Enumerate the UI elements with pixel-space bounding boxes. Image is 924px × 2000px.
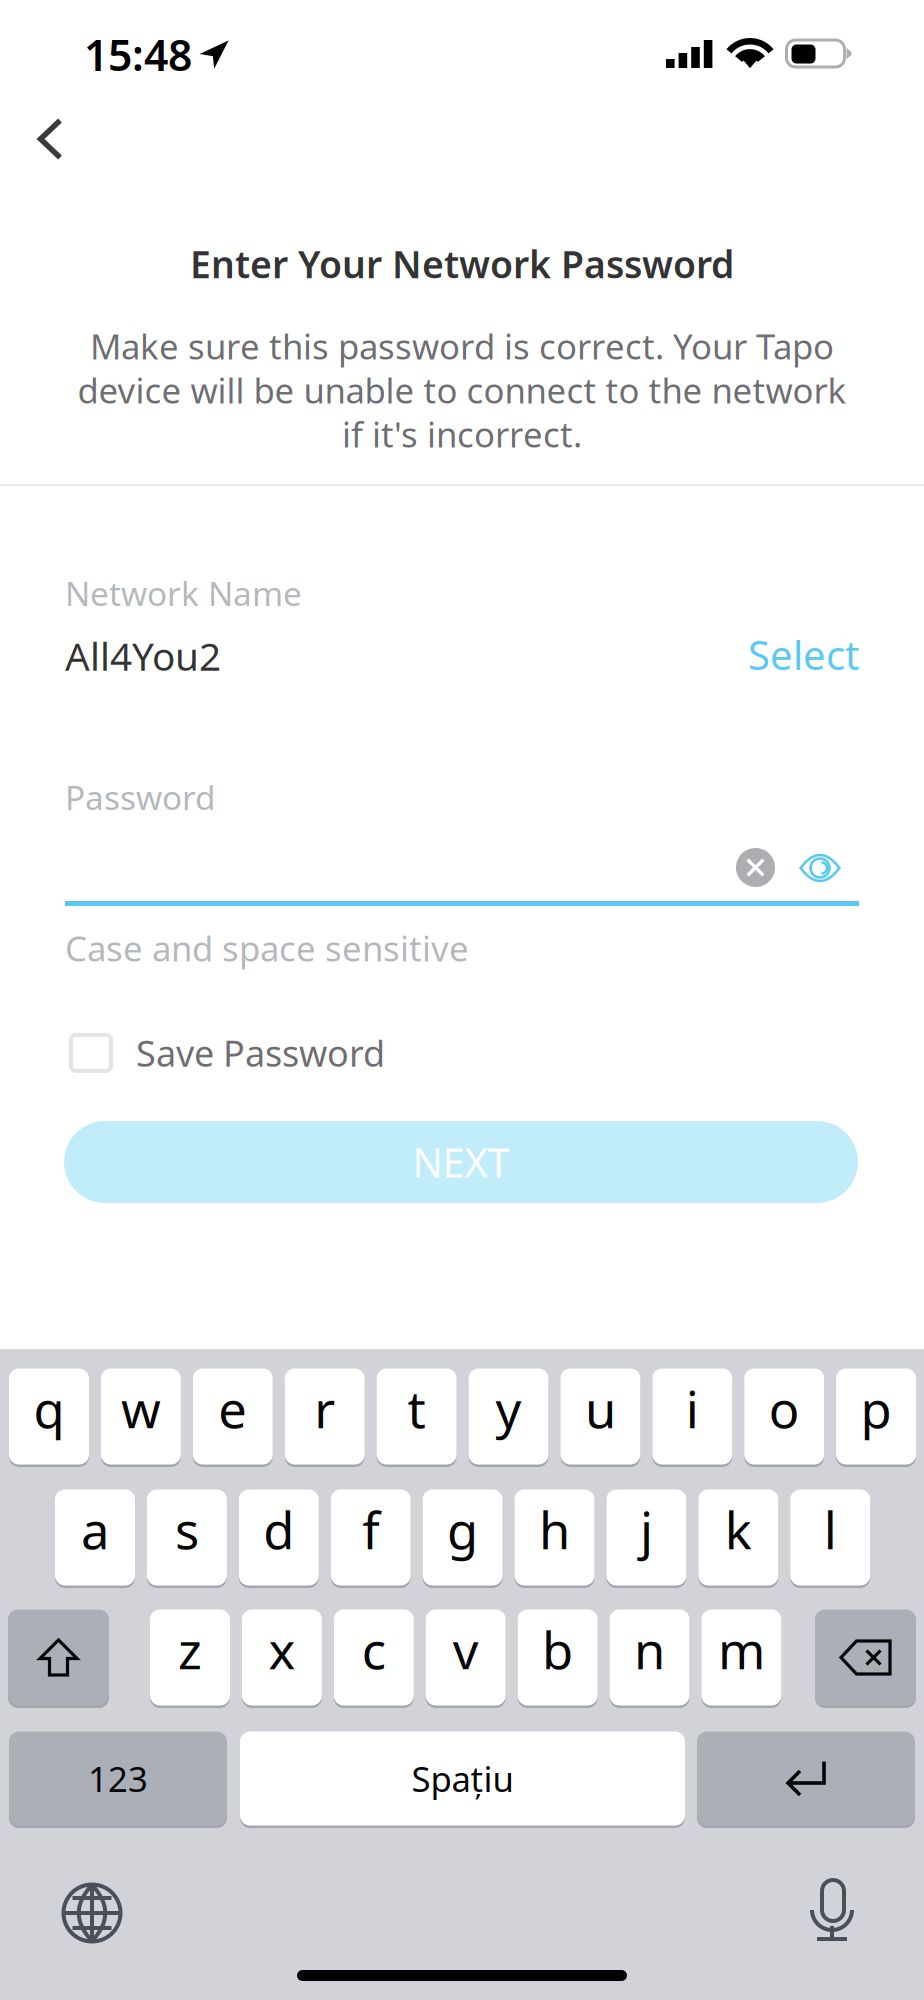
- button[interactable]: e: [193, 1367, 273, 1466]
- staticText: p: [861, 1375, 892, 1442]
- staticText: All4You2: [65, 630, 221, 681]
- button[interactable]: j: [606, 1488, 686, 1587]
- staticText: y: [495, 1375, 521, 1442]
- button[interactable]: Spațiu: [240, 1730, 685, 1827]
- button[interactable]: f: [331, 1488, 411, 1587]
- button[interactable]: l: [790, 1488, 870, 1587]
- button[interactable]: y: [468, 1367, 548, 1466]
- button[interactable]: Next keyboard: [63, 1884, 121, 1942]
- staticText: x: [268, 1616, 295, 1683]
- staticText: Select: [748, 628, 859, 681]
- staticText: t: [408, 1375, 426, 1442]
- staticText: Case and space sensitive: [65, 925, 469, 971]
- button[interactable]: Shift: [8, 1608, 109, 1707]
- staticText: Enter Your Network Password: [190, 239, 734, 289]
- staticText: Network Name: [65, 571, 302, 615]
- staticText: s: [175, 1496, 199, 1563]
- staticText: z: [178, 1616, 202, 1683]
- button[interactable]: v: [426, 1608, 506, 1707]
- button[interactable]: h: [514, 1488, 594, 1587]
- button[interactable]: Return: [697, 1730, 915, 1827]
- button[interactable]: s: [147, 1488, 227, 1587]
- staticText: o: [769, 1375, 800, 1442]
- staticText: w: [121, 1375, 161, 1442]
- staticText: a: [81, 1496, 109, 1563]
- staticText: d: [263, 1496, 294, 1563]
- button[interactable]: Dictation: [812, 1880, 853, 1940]
- staticText: h: [539, 1496, 570, 1563]
- staticText: q: [33, 1375, 64, 1442]
- button[interactable]: Select: [734, 618, 873, 691]
- staticText: m: [718, 1616, 765, 1683]
- button[interactable]: i: [652, 1367, 732, 1466]
- staticText: n: [634, 1616, 665, 1683]
- staticText: g: [447, 1496, 478, 1563]
- button[interactable]: o: [744, 1367, 824, 1466]
- staticText: device will be unable to connect to the …: [77, 367, 846, 413]
- button[interactable]: t: [377, 1367, 457, 1466]
- staticText: NEXT: [412, 1135, 509, 1188]
- button[interactable]: Show password: [799, 854, 841, 882]
- staticText: u: [585, 1375, 616, 1442]
- button[interactable]: p: [836, 1367, 916, 1466]
- staticText: Spațiu: [411, 1755, 513, 1801]
- button[interactable]: Back: [22, 104, 86, 174]
- button[interactable]: q: [9, 1367, 89, 1466]
- staticText: if it's incorrect.: [342, 411, 582, 457]
- button[interactable]: m: [701, 1608, 781, 1707]
- staticText: r: [314, 1375, 335, 1442]
- button[interactable]: Clear: [736, 848, 775, 887]
- button[interactable]: b: [518, 1608, 598, 1707]
- button[interactable]: u: [560, 1367, 640, 1466]
- button[interactable]: c: [334, 1608, 414, 1707]
- button[interactable]: 123: [9, 1730, 227, 1827]
- staticText: c: [362, 1616, 386, 1683]
- button[interactable]: r: [285, 1367, 365, 1466]
- staticText: j: [640, 1496, 653, 1563]
- staticText: v: [453, 1616, 479, 1683]
- button[interactable]: a: [55, 1488, 135, 1587]
- staticText: f: [362, 1496, 379, 1563]
- staticText: b: [542, 1616, 573, 1683]
- button[interactable]: d: [239, 1488, 319, 1587]
- button[interactable]: w: [101, 1367, 181, 1466]
- staticText: l: [824, 1496, 837, 1563]
- button[interactable]: k: [698, 1488, 778, 1587]
- button[interactable]: g: [423, 1488, 503, 1587]
- staticText: 123: [88, 1755, 148, 1801]
- staticText: k: [725, 1496, 752, 1563]
- button[interactable]: n: [609, 1608, 689, 1707]
- staticText: Make sure this password is correct. Your…: [90, 323, 834, 369]
- staticText: e: [218, 1375, 247, 1442]
- staticText: 15:48: [84, 26, 192, 83]
- button[interactable]: Save Password: [63, 1021, 385, 1085]
- staticText: Save Password: [136, 1029, 385, 1077]
- button[interactable]: Delete: [815, 1608, 916, 1707]
- button[interactable]: NEXT: [64, 1121, 858, 1203]
- button[interactable]: z: [150, 1608, 230, 1707]
- staticText: i: [686, 1375, 699, 1442]
- button[interactable]: x: [242, 1608, 322, 1707]
- staticText: Password: [65, 775, 216, 819]
